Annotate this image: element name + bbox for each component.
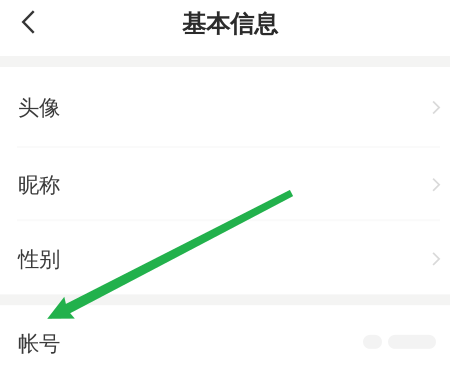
staticText: 头像 xyxy=(18,95,60,121)
button[interactable]: 帐号 xyxy=(0,305,450,376)
staticText: 昵称 xyxy=(18,172,60,198)
button[interactable]: 性别 xyxy=(0,221,450,294)
staticText: 基本信息 xyxy=(182,9,278,39)
staticText: 性别 xyxy=(18,246,60,272)
button[interactable]: 昵称 xyxy=(0,148,450,219)
button[interactable]: 头像 xyxy=(0,67,450,146)
staticText: 帐号 xyxy=(18,331,60,357)
button[interactable]: Back xyxy=(0,0,49,44)
